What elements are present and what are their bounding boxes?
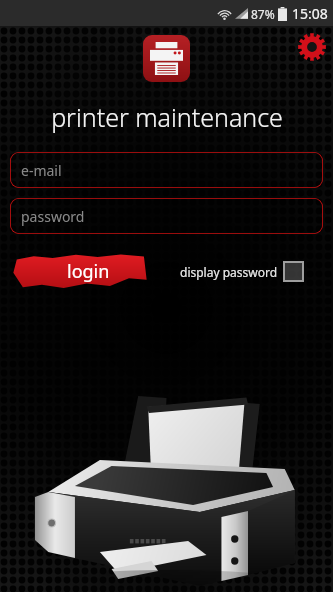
button[interactable]: login (12, 253, 148, 289)
staticText: printer maintenance (51, 100, 283, 134)
button[interactable]: password (10, 198, 323, 234)
button[interactable]: Settings (295, 30, 329, 64)
button[interactable]: e-mail (10, 152, 323, 188)
staticText: display password (180, 264, 278, 280)
staticText: 15:08 (292, 4, 328, 23)
staticText: e-mail (21, 161, 62, 180)
staticText: password (21, 207, 85, 226)
staticText: 87% (251, 6, 275, 22)
button[interactable]: display password (180, 262, 303, 281)
staticText: login (67, 259, 110, 284)
